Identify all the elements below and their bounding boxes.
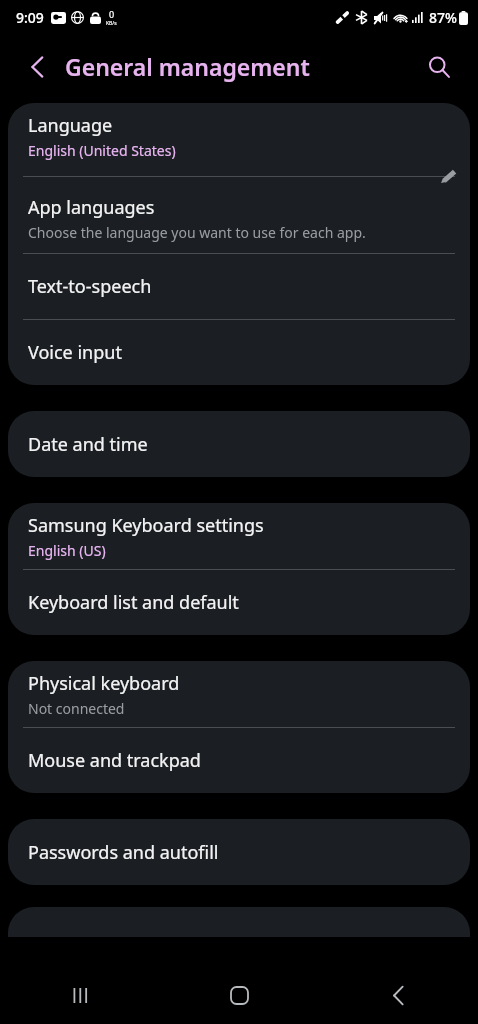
staticText: Voice input (28, 340, 122, 365)
staticText: 9:09 (16, 8, 44, 27)
staticText: Not connected (28, 699, 125, 718)
button[interactable]: Edit (434, 169, 464, 183)
button[interactable]: Passwords and autofill (8, 819, 470, 885)
staticText: Language (28, 113, 113, 138)
button[interactable]: Back (319, 966, 478, 1024)
button[interactable]: Keyboard list and default (8, 570, 470, 635)
button[interactable]: Search (419, 47, 459, 87)
staticText: Date and time (28, 432, 148, 457)
button[interactable]: Date and time (8, 411, 470, 477)
button[interactable]: Recent apps (0, 966, 160, 1024)
button[interactable]: Back (18, 48, 56, 86)
button[interactable]: Voice input (8, 320, 470, 385)
staticText: Keyboard list and default (28, 590, 239, 615)
staticText: Samsung Keyboard settings (28, 513, 264, 538)
button[interactable]: Language (8, 103, 470, 169)
button[interactable]: Text-to-speech (8, 254, 470, 319)
button[interactable]: App languages (8, 183, 470, 253)
staticText: 0 (109, 8, 115, 20)
staticText: English (United States) (28, 141, 176, 160)
button[interactable]: Physical keyboard (8, 661, 470, 727)
button[interactable]: Mouse and trackpad (8, 728, 470, 793)
staticText: Physical keyboard (28, 671, 180, 696)
button[interactable] (8, 907, 470, 937)
staticText: 87% (429, 8, 457, 27)
staticText: English (US) (28, 541, 106, 560)
staticText: App languages (28, 195, 155, 220)
staticText: Choose the language you want to use for … (28, 223, 366, 242)
staticText: KB/s (106, 20, 117, 27)
staticText: Text-to-speech (28, 274, 152, 299)
button[interactable]: Home (160, 966, 319, 1024)
button[interactable]: Samsung Keyboard settings (8, 503, 470, 569)
staticText: General management (65, 51, 310, 82)
staticText: Mouse and trackpad (28, 748, 201, 773)
staticText: Passwords and autofill (28, 840, 219, 865)
